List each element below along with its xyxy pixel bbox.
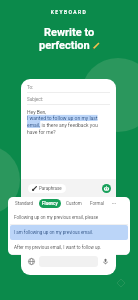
staticText: Following up on my previous email, pleas… [14,215,99,220]
staticText: After my previous email, I want to follo… [14,245,102,250]
button[interactable]: Change language [26,256,37,267]
button[interactable]: More options [110,201,119,206]
staticText: KEYBOARD [0,9,138,15]
button[interactable]: Paraphrase [28,184,66,193]
staticText: Formal [90,201,105,206]
staticText: perfection [39,39,90,52]
staticText: I am following up on my previous email. [14,230,94,235]
button[interactable]: I am following up on my previous email. [10,225,128,240]
staticText: Rewrite to [44,26,95,39]
button[interactable]: Formal [87,199,108,208]
button[interactable]: Custom [63,199,85,208]
button[interactable]: Fluency [39,199,61,208]
button[interactable]: Voice input [100,256,111,267]
staticText: I wanted to follow up on my last email, … [27,115,98,135]
button[interactable]: Standard [12,199,37,208]
staticText: Custom [66,201,82,206]
button[interactable]: After my previous email, I want to follo… [10,240,128,255]
button[interactable]: Following up on my previous email, pleas… [10,210,128,225]
button[interactable]: AI assistant [102,184,111,193]
staticText: Hey Ben, [27,109,47,115]
staticText: Standard [15,201,34,206]
staticText: To: [27,85,34,90]
staticText: Paraphrase [39,186,62,191]
staticText: Fluency [42,201,58,206]
staticText: Subject: [27,97,44,102]
staticText: ••• [112,201,117,206]
